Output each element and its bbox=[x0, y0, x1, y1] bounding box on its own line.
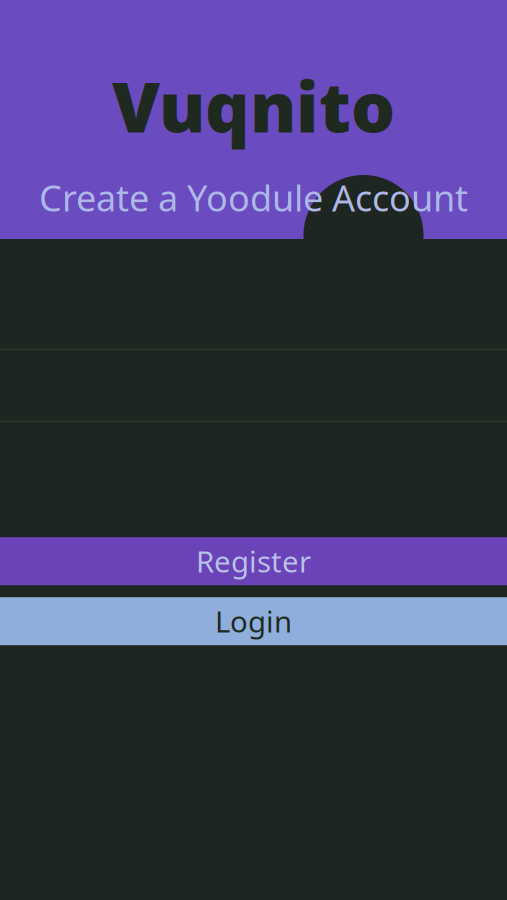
button[interactable]: Login bbox=[0, 597, 507, 645]
staticText: Register bbox=[196, 542, 311, 581]
staticText: Login bbox=[215, 602, 292, 641]
button[interactable]: Register bbox=[0, 537, 507, 585]
staticText: Create a Yoodule Account bbox=[39, 174, 468, 221]
staticText: Vuqnito bbox=[112, 60, 395, 152]
